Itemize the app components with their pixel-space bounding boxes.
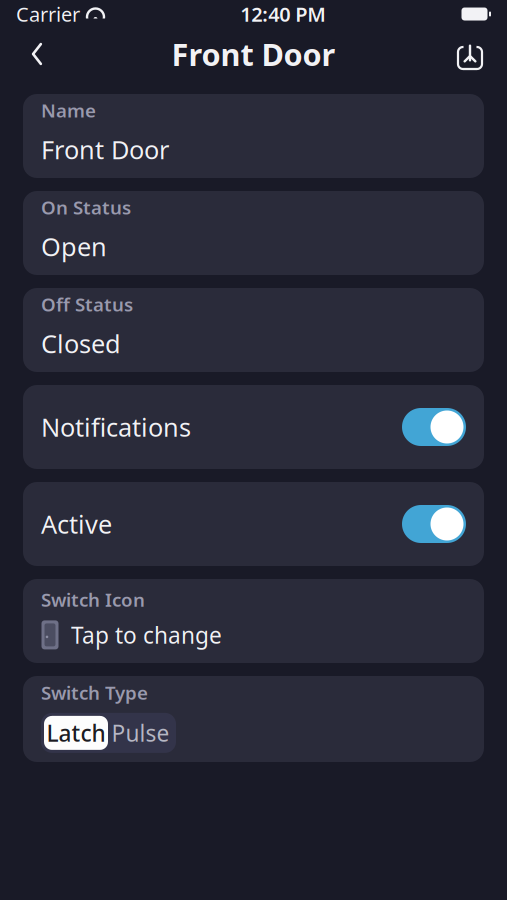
staticText: Notifications [41,410,191,444]
staticText: Switch Type [41,680,148,705]
button[interactable]: Name [23,94,484,178]
button[interactable]: On Status [23,191,484,275]
staticText: Switch Icon [41,587,145,612]
staticText: Latch [46,718,105,748]
staticText: Front Door [171,34,335,74]
staticText: Front Door [41,133,169,166]
button[interactable]: Off Status [23,288,484,372]
staticText: Closed [41,327,121,360]
staticText: 12:40 PM [240,1,326,27]
staticText: Open [41,230,107,263]
staticText: On Status [41,195,131,220]
button[interactable]: Pulse [108,716,173,750]
button[interactable]: Notifications [23,385,484,469]
staticText: Off Status [41,292,133,317]
button[interactable]: Switch Icon [23,579,484,663]
staticText: Carrier [16,1,80,27]
button[interactable]: Active [23,482,484,566]
staticText: Pulse [111,718,169,748]
button[interactable]: Save [447,31,493,77]
staticText: Active [41,507,112,541]
button[interactable]: Latch [44,716,108,750]
staticText: Name [41,98,96,123]
staticText: Tap to change [71,620,222,650]
button[interactable]: Back [14,31,60,77]
